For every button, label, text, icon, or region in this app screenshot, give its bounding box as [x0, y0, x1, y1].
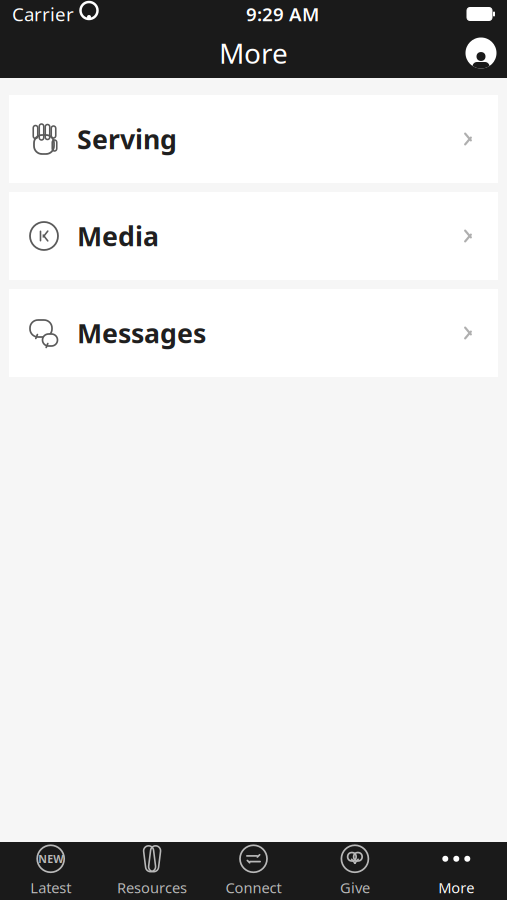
staticText: More — [438, 878, 474, 897]
button[interactable]: Resources — [101, 842, 203, 900]
staticText: NEW — [38, 852, 63, 866]
button[interactable]: More — [406, 842, 507, 900]
staticText: Messages — [77, 315, 206, 351]
staticText: Latest — [30, 878, 71, 897]
staticText: Give — [340, 878, 370, 897]
staticText: Connect — [225, 878, 281, 897]
staticText: Serving — [77, 121, 177, 157]
staticText: More — [219, 34, 288, 72]
button[interactable]: Give — [304, 842, 406, 900]
button[interactable]: Connect — [203, 842, 304, 900]
staticText: Resources — [117, 878, 187, 897]
button[interactable]: NEW — [0, 842, 101, 900]
staticText: Carrier — [12, 2, 74, 26]
button[interactable]: Profile — [455, 28, 507, 78]
button[interactable]: Media — [9, 192, 498, 280]
button[interactable]: Serving — [9, 95, 498, 183]
staticText: Media — [77, 218, 159, 254]
staticText: 9:29 AM — [246, 2, 319, 26]
button[interactable]: Messages — [9, 289, 498, 377]
